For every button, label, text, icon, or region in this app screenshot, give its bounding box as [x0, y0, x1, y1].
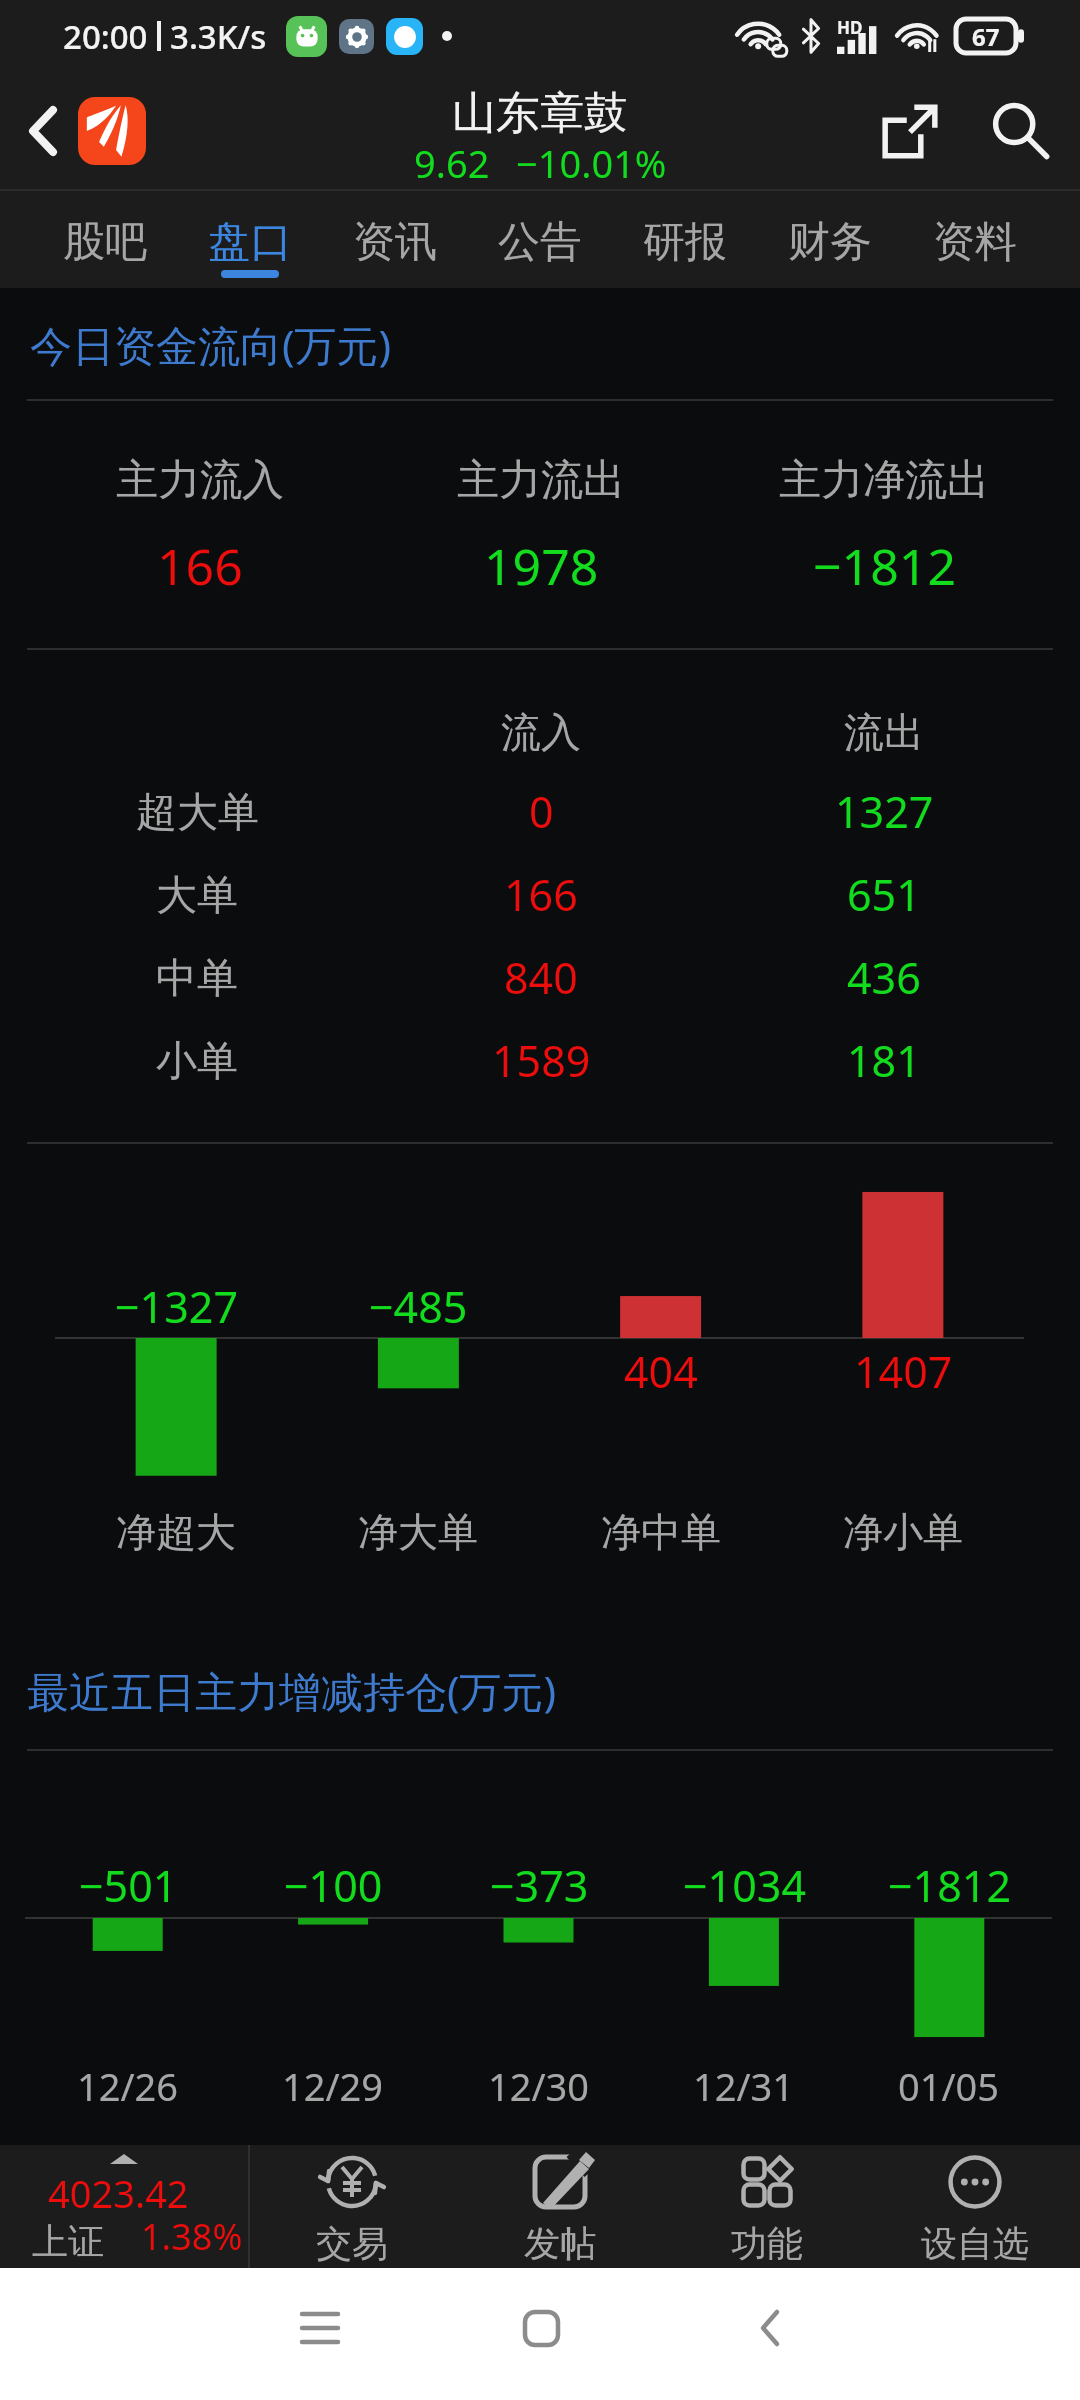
staticText: 840 — [504, 948, 578, 1007]
staticText: 股吧 — [63, 216, 147, 269]
staticText: HD — [837, 16, 863, 39]
staticText: −1812 — [813, 532, 956, 600]
staticText: 12/26 — [77, 2060, 179, 2112]
staticText: −373 — [490, 1856, 589, 1915]
button[interactable]: 盘口 — [177, 191, 322, 288]
staticText: 超大单 — [136, 787, 259, 839]
button[interactable]: 功能 — [663, 2145, 871, 2268]
button[interactable]: Share — [864, 72, 955, 190]
staticText: 651 — [847, 865, 921, 924]
staticText: 资讯 — [353, 216, 437, 269]
staticText: 盘口 — [208, 216, 292, 269]
staticText: −10.01% — [516, 137, 667, 189]
staticText: 中单 — [156, 953, 238, 1005]
staticText: 166 — [504, 865, 578, 924]
button[interactable]: 公告 — [467, 191, 612, 288]
staticText: 01/05 — [898, 2060, 1000, 2112]
staticText: 1407 — [854, 1342, 953, 1401]
staticText: −1034 — [683, 1856, 806, 1915]
button[interactable]: 上证 index 4023.42 up 1.38% — [0, 2145, 248, 2268]
staticText: 1978 — [484, 532, 599, 600]
staticText: 今日资金流向(万元) — [30, 316, 392, 373]
staticText: 67 — [972, 20, 1000, 53]
staticText: −501 — [79, 1856, 178, 1915]
staticText: 181 — [847, 1031, 921, 1090]
staticText: 最近五日主力增减持仓(万元) — [27, 1662, 557, 1719]
staticText: 功能 — [731, 2221, 803, 2266]
staticText: 流出 — [844, 707, 924, 757]
staticText: 交易 — [316, 2221, 388, 2266]
staticText: 设自选 — [921, 2221, 1029, 2266]
staticText: 166 — [157, 532, 243, 600]
staticText: 发帖 — [524, 2221, 596, 2266]
staticText: 1327 — [835, 782, 934, 841]
staticText: 1589 — [492, 1031, 591, 1090]
staticText: 净小单 — [843, 1507, 963, 1557]
button[interactable]: 设自选 — [871, 2145, 1079, 2268]
staticText: 12/31 — [693, 2060, 795, 2112]
staticText: −1327 — [115, 1277, 238, 1336]
staticText: 净中单 — [601, 1507, 721, 1557]
button[interactable]: 股吧 — [33, 191, 177, 288]
button[interactable]: Back — [0, 72, 85, 190]
button[interactable]: Back — [714, 2268, 824, 2378]
button[interactable]: 发帖 — [456, 2145, 664, 2268]
staticText: 主力流出 — [457, 454, 625, 507]
button[interactable]: 研报 — [612, 191, 757, 288]
button[interactable]: 交易 — [248, 2145, 456, 2268]
staticText: 1.38% — [141, 2212, 243, 2261]
staticText: 436 — [847, 948, 921, 1007]
staticText: 财务 — [788, 216, 872, 269]
button[interactable]: 财务 — [757, 191, 902, 288]
button[interactable]: 资料 — [902, 191, 1047, 288]
button[interactable]: Home — [486, 2268, 596, 2378]
staticText: 流入 — [501, 707, 581, 757]
staticText: 0 — [529, 782, 554, 841]
staticText: 404 — [624, 1342, 698, 1401]
staticText: 净超大 — [116, 1507, 236, 1557]
staticText: 12/30 — [488, 2060, 590, 2112]
staticText: 9.62 — [414, 137, 490, 189]
button[interactable]: Search — [968, 72, 1072, 190]
staticText: 公告 — [498, 216, 582, 269]
staticText: 12/29 — [282, 2060, 384, 2112]
staticText: 净大单 — [358, 1507, 478, 1557]
staticText: 山东章鼓 — [452, 86, 628, 141]
staticText: 小单 — [156, 1036, 238, 1088]
staticText: −1812 — [888, 1856, 1011, 1915]
staticText: 3.3K/s — [170, 14, 267, 59]
staticText: −485 — [369, 1277, 468, 1336]
staticText: 4023.42 — [48, 2167, 189, 2219]
staticText: 大单 — [156, 870, 238, 922]
staticText: −100 — [284, 1856, 383, 1915]
staticText: 主力流入 — [116, 454, 284, 507]
button[interactable]: 资讯 — [322, 191, 467, 288]
staticText: 资料 — [933, 216, 1017, 269]
staticText: 研报 — [643, 216, 727, 269]
button[interactable]: Recents — [265, 2268, 375, 2378]
staticText: 20:00 — [63, 14, 148, 59]
staticText: 主力净流出 — [779, 454, 989, 507]
staticText: 上证 — [32, 2219, 104, 2264]
